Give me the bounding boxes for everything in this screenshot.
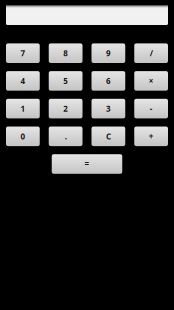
button[interactable]: 7 bbox=[6, 43, 40, 63]
staticText: 0 bbox=[20, 131, 25, 142]
button[interactable]: = bbox=[52, 154, 122, 174]
staticText: C bbox=[106, 131, 111, 142]
button[interactable]: 9 bbox=[91, 43, 125, 63]
staticText: / bbox=[150, 48, 153, 58]
staticText: 3 bbox=[106, 103, 111, 114]
staticText: 6 bbox=[106, 76, 111, 86]
staticText: 5 bbox=[63, 76, 68, 86]
staticText: 8 bbox=[63, 48, 68, 58]
staticText: . bbox=[65, 131, 67, 142]
staticText: - bbox=[150, 103, 153, 114]
staticText: 2 bbox=[63, 103, 68, 114]
button[interactable]: × bbox=[134, 71, 168, 91]
button[interactable]: 8 bbox=[49, 43, 83, 63]
button[interactable]: 2 bbox=[49, 99, 83, 118]
staticText: × bbox=[149, 76, 154, 86]
staticText: 1 bbox=[20, 103, 25, 114]
button[interactable]: 6 bbox=[91, 71, 125, 91]
button[interactable]: 5 bbox=[49, 71, 83, 91]
staticText: 7 bbox=[20, 48, 25, 58]
button[interactable]: C bbox=[91, 126, 125, 146]
staticText: 9 bbox=[106, 48, 111, 58]
button[interactable]: + bbox=[134, 126, 168, 146]
button[interactable]: 1 bbox=[6, 99, 40, 118]
button[interactable]: / bbox=[134, 43, 168, 63]
staticText: + bbox=[149, 131, 154, 142]
button[interactable]: 3 bbox=[91, 99, 125, 118]
staticText: = bbox=[84, 159, 89, 169]
staticText: 4 bbox=[20, 76, 25, 86]
button[interactable]: . bbox=[49, 126, 83, 146]
button[interactable]: 4 bbox=[6, 71, 40, 91]
button[interactable]: 0 bbox=[6, 126, 40, 146]
button[interactable]: - bbox=[134, 99, 168, 118]
